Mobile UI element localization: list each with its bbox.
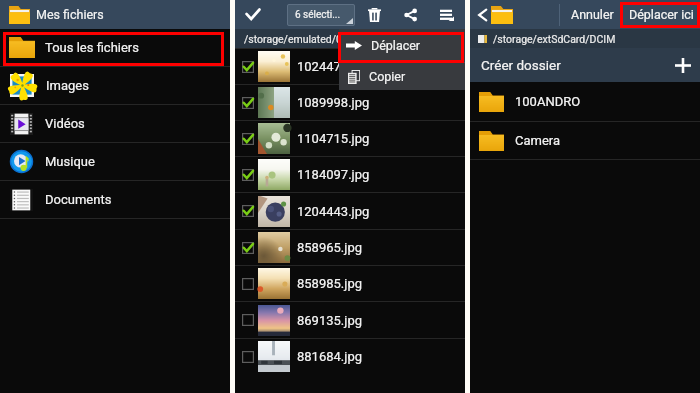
button[interactable]: Back	[478, 7, 487, 23]
staticText: Vidéos	[45, 116, 85, 131]
button[interactable]: 1204443.jpg	[235, 193, 465, 229]
button[interactable]: 1104715.jpg	[235, 121, 465, 156]
button[interactable]: 1024473.jpg	[235, 49, 465, 84]
button[interactable]: Tous les fichiers	[0, 29, 230, 66]
button[interactable]: 858985.jpg	[235, 266, 465, 301]
staticText: 858985.jpg	[297, 276, 362, 291]
staticText: 1024473.jpg	[297, 59, 370, 74]
button[interactable]: Créer dossier	[470, 48, 700, 82]
button[interactable]: 858965.jpg	[235, 230, 465, 265]
staticText: 100ANDRO	[515, 94, 581, 109]
staticText: 6 sélecti...	[295, 9, 341, 21]
staticText: Musique	[45, 154, 95, 169]
staticText: Copier	[369, 69, 406, 84]
button[interactable]: 6 sélecti...	[287, 4, 355, 26]
staticText: 1104715.jpg	[297, 131, 370, 146]
button[interactable]: Documents	[0, 181, 230, 218]
staticText: Déplacer	[371, 38, 421, 53]
staticText: Images	[46, 78, 89, 93]
button[interactable]: Images	[0, 67, 230, 104]
button[interactable]: Share	[392, 0, 429, 29]
button[interactable]: /storage/extSdCard/DCIM	[470, 29, 700, 48]
staticText: 1184097.jpg	[297, 167, 370, 182]
button[interactable]: 869135.jpg	[235, 302, 465, 338]
button[interactable]: /storage/emulated/0/DCIM/Camera	[235, 29, 465, 48]
staticText: 881684.jpg	[297, 349, 362, 364]
staticText: 869135.jpg	[297, 313, 362, 328]
button[interactable]: Camera	[470, 122, 700, 159]
button[interactable]: 881684.jpg	[235, 339, 465, 374]
staticText: 858965.jpg	[297, 240, 362, 255]
staticText: Déplacer ici	[629, 7, 694, 22]
staticText: /storage/extSdCard/DCIM	[493, 33, 616, 45]
staticText: /storage/emulated/0/DCIM/Camera	[244, 33, 413, 45]
staticText: Annuler	[571, 7, 614, 22]
staticText: Créer dossier	[481, 57, 561, 73]
button[interactable]: Vidéos	[0, 105, 230, 142]
staticText: Mes fichiers	[36, 7, 104, 22]
button[interactable]: Déplacer	[339, 29, 465, 62]
button[interactable]: Déplacer ici	[619, 0, 700, 29]
button[interactable]: Mes fichiers	[0, 0, 230, 29]
button[interactable]: Select all	[235, 0, 271, 29]
button[interactable]: More options	[429, 0, 465, 29]
staticText: Documents	[45, 192, 112, 207]
button[interactable]: Copier	[339, 63, 465, 90]
button[interactable]: Musique	[0, 143, 230, 180]
staticText: 1204443.jpg	[297, 204, 370, 219]
button[interactable]: Annuler	[560, 0, 619, 29]
staticText: Camera	[515, 133, 561, 148]
staticText: 1089998.jpg	[297, 95, 370, 110]
button[interactable]: 1089998.jpg	[235, 85, 465, 120]
button[interactable]: Delete	[357, 0, 392, 29]
button[interactable]: 100ANDRO	[470, 82, 700, 121]
button[interactable]: 1184097.jpg	[235, 157, 465, 192]
staticText: Tous les fichiers	[45, 40, 139, 55]
